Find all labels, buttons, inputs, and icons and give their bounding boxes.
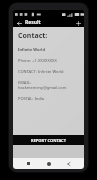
button[interactable]: Back: [15, 19, 23, 27]
button[interactable]: Home: [44, 159, 53, 168]
button[interactable]: Settings: [74, 19, 82, 27]
staticText: CONTACT: Infinite World: [18, 69, 64, 74]
staticText: POSTAL: India: [18, 96, 45, 101]
button[interactable]: Recents: [24, 159, 33, 168]
staticText: Phone: +1-XXXXXXXX: [18, 58, 57, 63]
button[interactable]: Back: [64, 159, 73, 168]
staticText: Contact:: [18, 31, 48, 41]
staticText: Infinite World: [18, 47, 45, 52]
staticText: Result: [25, 19, 41, 26]
staticText: REPORT CONTACT: [31, 138, 66, 143]
staticText: EMAIL: hackmemirsy@gmail.com: [18, 80, 80, 90]
button[interactable]: REPORT CONTACT: [13, 135, 84, 145]
